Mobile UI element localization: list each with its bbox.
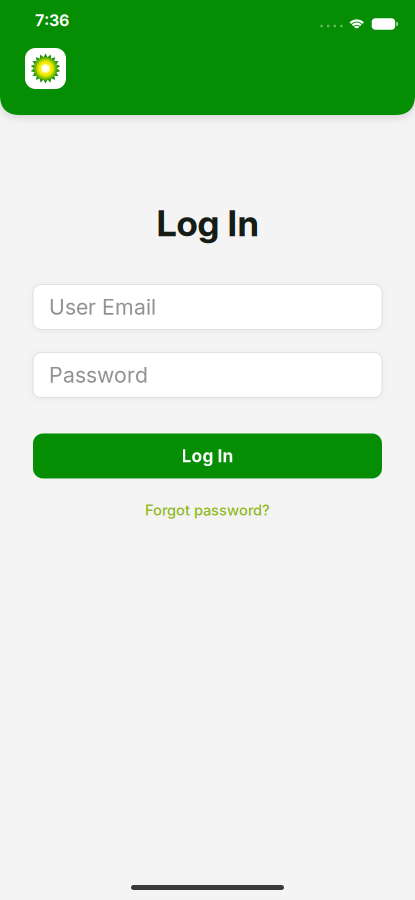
staticText: User Email [49,294,156,320]
button[interactable]: Log In [33,433,382,478]
staticText: Log In [181,446,233,466]
button[interactable]: Forgot password? [145,501,270,519]
staticText: 7:36 [35,11,69,30]
staticText: Password [49,362,148,388]
staticText: Forgot password? [145,501,270,519]
staticText: Log In [156,202,258,244]
button[interactable]: User Email [33,284,382,329]
button[interactable]: Password [33,352,382,397]
